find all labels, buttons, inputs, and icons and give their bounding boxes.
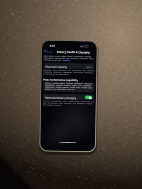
staticText: Peak Performance Capability [43, 78, 78, 81]
button[interactable]: Back [44, 50, 53, 53]
staticText: Maximum Capacity [45, 65, 67, 68]
button[interactable] [63, 60, 70, 62]
button[interactable] [43, 82, 94, 92]
button[interactable]: Optimized Battery Charging toggle [85, 95, 92, 99]
staticText: Battery Health & Charging [57, 50, 90, 53]
staticText: 9:41 [50, 44, 56, 48]
staticText: Optimized Battery Charging [45, 96, 77, 99]
other: Back [44, 50, 46, 53]
button[interactable]: Maximum Capacity [43, 63, 95, 69]
button[interactable]: Optimized Battery Charging [43, 94, 94, 100]
staticText: 88 % [86, 65, 93, 68]
staticText: Back [47, 50, 53, 53]
